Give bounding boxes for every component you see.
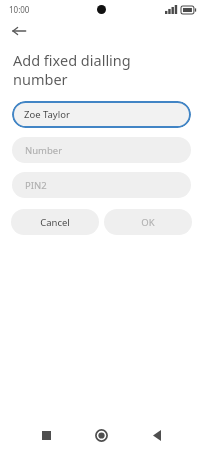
staticText: Cancel [40, 216, 70, 229]
button[interactable]: Recent apps [32, 421, 60, 449]
button[interactable]: Back [6, 18, 32, 44]
staticText: Add fixed dialling number [13, 50, 148, 89]
staticText: PIN2 [25, 179, 47, 192]
staticText: OK [141, 216, 155, 229]
button[interactable]: Home [87, 421, 115, 449]
button[interactable]: Cancel [11, 209, 99, 235]
button[interactable]: Back [143, 421, 171, 449]
staticText: 10:00 [9, 4, 30, 15]
staticText: Number [25, 144, 63, 157]
staticText: Zoe Taylor [24, 108, 70, 121]
button[interactable]: OK [104, 209, 192, 235]
button[interactable]: Zoe Taylor [12, 101, 191, 128]
button[interactable]: PIN2 [12, 172, 191, 198]
button[interactable]: Number [12, 137, 191, 163]
